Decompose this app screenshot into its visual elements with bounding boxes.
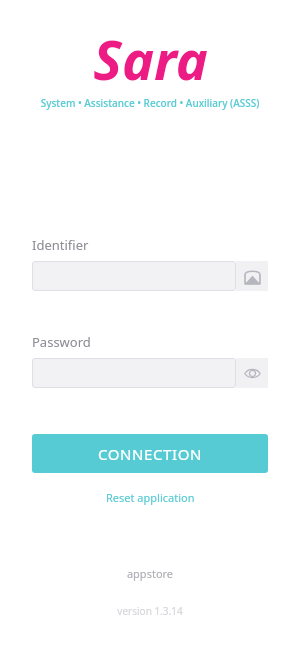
staticText: Identifier [32,236,89,254]
button[interactable]: CONNECTION [32,434,268,473]
staticText: CONNECTION [98,444,203,464]
button[interactable]: Reset application [98,487,203,508]
staticText: Sara [93,22,208,90]
button[interactable]: appstore [0,566,300,581]
staticText: System • Assistance • Record • Auxiliary… [28,96,272,110]
button[interactable]: Email [236,261,268,291]
button[interactable] [32,358,236,388]
staticText: Password [32,333,91,351]
button[interactable] [32,261,236,291]
button[interactable]: Show password [236,358,268,388]
staticText: Reset application [106,490,195,505]
staticText: version 1.3.14 [0,604,300,618]
